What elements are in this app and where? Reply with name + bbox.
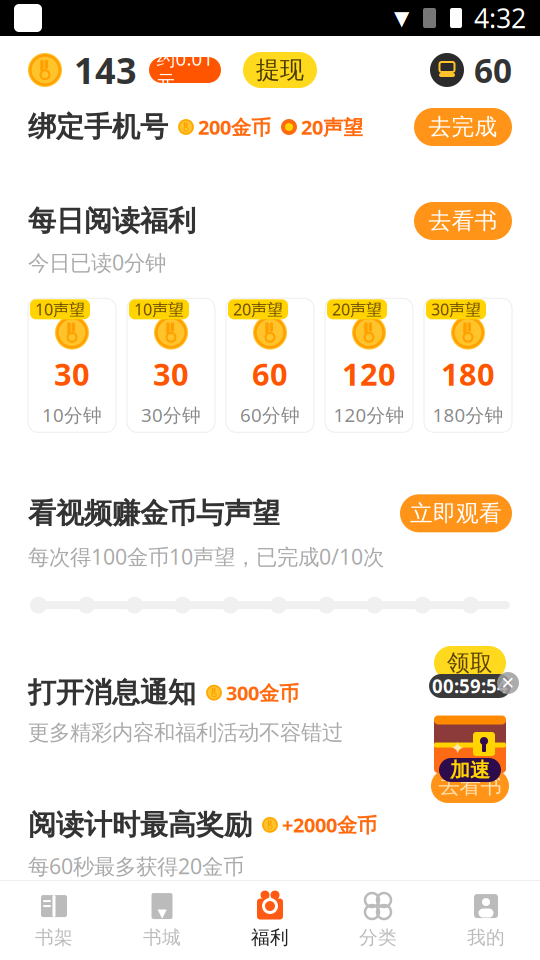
staticText: 我的 bbox=[467, 926, 505, 949]
staticText: 今日已读0分钟 bbox=[28, 248, 166, 276]
staticText: 每60秒最多获得20金币 bbox=[28, 852, 244, 880]
staticText: 阅读计时最高奖励 bbox=[28, 808, 252, 842]
staticText: 看视频赚金币与声望 bbox=[28, 496, 280, 530]
staticText: 10声望 bbox=[134, 299, 184, 320]
staticText: 10声望 bbox=[35, 299, 85, 320]
staticText: 书架 bbox=[35, 926, 73, 949]
button[interactable]: 提现 bbox=[243, 52, 317, 88]
staticText: ▼ bbox=[157, 906, 166, 920]
staticText: 00:59:54 bbox=[432, 674, 508, 698]
staticText: 提现 bbox=[256, 55, 304, 85]
button[interactable]: ▼ bbox=[108, 887, 216, 953]
button[interactable]: 福利 bbox=[216, 887, 324, 953]
staticText: 更多精彩内容和福利活动不容错过 bbox=[28, 720, 343, 746]
staticText: ✦ bbox=[450, 738, 465, 758]
staticText: 60 bbox=[252, 354, 288, 394]
staticText: 去完成 bbox=[428, 113, 497, 141]
staticText: 每日阅读福利 bbox=[28, 204, 196, 238]
button[interactable]: 180 bbox=[424, 298, 512, 432]
staticText: 领取 bbox=[447, 649, 493, 677]
staticText: 30声望 bbox=[431, 299, 481, 320]
button[interactable]: 30 bbox=[28, 298, 116, 432]
staticText: 120分钟 bbox=[333, 402, 404, 427]
staticText: ✕ bbox=[500, 673, 515, 693]
button[interactable]: 关闭 bbox=[497, 672, 519, 694]
staticText: 打开消息通知 bbox=[28, 675, 196, 710]
staticText: 4:32 bbox=[474, 0, 526, 36]
staticText: 20声望 bbox=[233, 299, 283, 320]
staticText: 立即观看 bbox=[410, 499, 502, 527]
button[interactable]: 去看书 bbox=[431, 769, 509, 803]
staticText: 120 bbox=[342, 354, 396, 394]
staticText: 300金币 bbox=[226, 679, 299, 706]
staticText: 180 bbox=[441, 354, 495, 394]
staticText: 加速 bbox=[450, 758, 490, 782]
staticText: ▼ bbox=[394, 7, 409, 29]
button[interactable]: 领取 bbox=[434, 646, 506, 680]
staticText: 书城 bbox=[143, 926, 181, 949]
staticText: 去看书 bbox=[438, 773, 501, 799]
staticText: 绑定手机号 bbox=[28, 110, 168, 144]
staticText: 分类 bbox=[359, 926, 397, 949]
staticText: 20声望 bbox=[332, 299, 382, 320]
staticText: 30分钟 bbox=[141, 402, 201, 427]
button[interactable]: 120 bbox=[325, 298, 413, 432]
staticText: 60 bbox=[474, 48, 512, 92]
staticText: 30 bbox=[54, 354, 90, 394]
staticText: 约0.01元 bbox=[156, 46, 213, 94]
staticText: 去看书 bbox=[428, 207, 497, 235]
button[interactable]: 去完成 bbox=[414, 108, 512, 146]
staticText: +2000金币 bbox=[282, 812, 377, 838]
button[interactable]: 我的 bbox=[432, 887, 540, 953]
staticText: 10分钟 bbox=[42, 402, 102, 427]
staticText: 60分钟 bbox=[240, 402, 300, 427]
button[interactable]: 立即观看 bbox=[400, 494, 512, 532]
button[interactable]: 60 bbox=[226, 298, 314, 432]
staticText: 福利 bbox=[251, 926, 289, 949]
staticText: 200金币 bbox=[198, 114, 271, 140]
button[interactable]: 30 bbox=[127, 298, 215, 432]
staticText: 143 bbox=[74, 46, 137, 94]
staticText: 180分钟 bbox=[432, 402, 503, 427]
button[interactable]: 书架 bbox=[0, 887, 108, 953]
button[interactable]: 去看书 bbox=[414, 202, 512, 240]
staticText: 每次得100金币10声望，已完成0/10次 bbox=[28, 542, 384, 571]
button[interactable]: 分类 bbox=[324, 887, 432, 953]
staticText: 30 bbox=[153, 354, 189, 394]
staticText: 20声望 bbox=[301, 114, 363, 140]
